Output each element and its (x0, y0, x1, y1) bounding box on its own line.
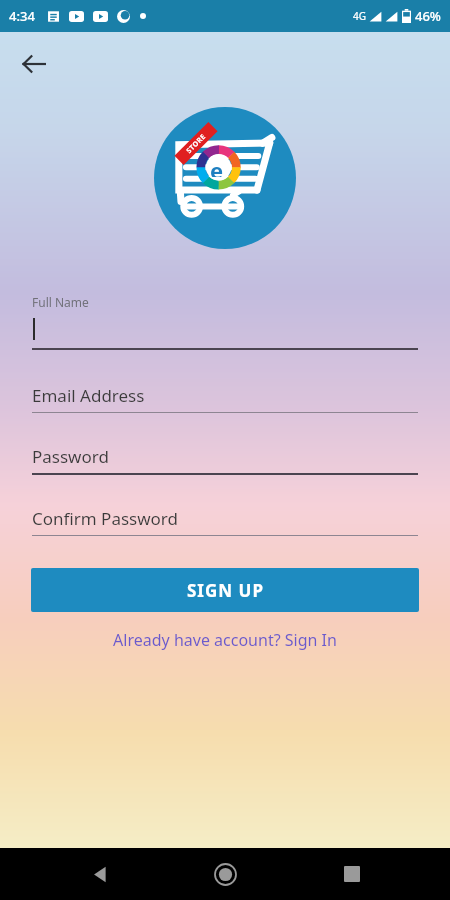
button[interactable]: Confirm Password (32, 501, 418, 536)
staticText: Email Address (32, 384, 145, 407)
button[interactable]: Back (71, 848, 127, 900)
button[interactable]: Back (10, 40, 58, 88)
button[interactable]: Password (32, 439, 418, 475)
staticText: 4:34 (9, 7, 35, 25)
button[interactable]: Email Address (32, 378, 418, 413)
button[interactable]: SIGN UP (31, 568, 419, 612)
staticText: 46% (415, 7, 441, 25)
button[interactable]: Home (197, 848, 253, 900)
staticText: STORE (184, 132, 208, 156)
staticText: Password (32, 445, 109, 468)
staticText: Confirm Password (32, 507, 178, 530)
staticText: e (210, 155, 224, 177)
staticText: Already have account? Sign In (113, 629, 337, 651)
button[interactable]: Recent apps (324, 848, 380, 900)
staticText: SIGN UP (187, 579, 264, 602)
staticText: 4G (353, 9, 366, 23)
staticText: Full Name (32, 294, 89, 310)
button[interactable]: Full Name (32, 294, 418, 350)
button[interactable]: Already have account? Sign In (0, 629, 450, 651)
